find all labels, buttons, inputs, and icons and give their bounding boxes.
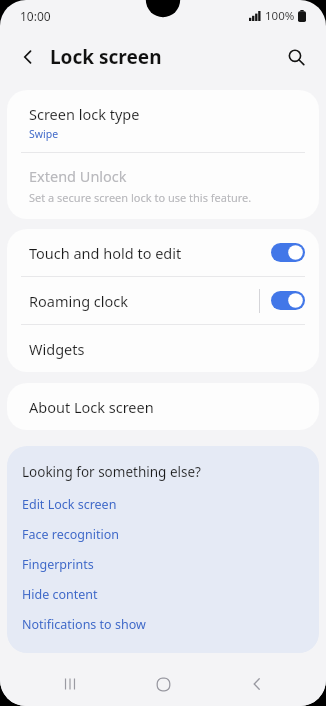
button[interactable]: Roaming clock xyxy=(7,277,319,324)
button[interactable]: About Lock screen xyxy=(7,383,319,430)
staticText: Looking for something else? xyxy=(22,463,201,481)
staticText: About Lock screen xyxy=(29,397,154,417)
staticText: Hide content xyxy=(22,586,98,603)
button[interactable]: Edit Lock screen xyxy=(7,489,319,519)
button[interactable]: Face recognition xyxy=(7,519,319,549)
staticText: Touch and hold to edit xyxy=(29,243,182,263)
button[interactable]: Notifications to show xyxy=(7,609,319,639)
staticText: Extend Unlock xyxy=(29,166,127,186)
staticText: Set a secure screen lock to use this fea… xyxy=(29,190,252,205)
button[interactable]: Recent apps xyxy=(46,662,94,706)
button[interactable]: Fingerprints xyxy=(7,549,319,579)
button[interactable]: Toggle on xyxy=(271,291,305,310)
button[interactable]: Touch and hold to edit xyxy=(7,229,319,276)
staticText: Fingerprints xyxy=(22,556,94,573)
button[interactable]: Extend Unlock xyxy=(7,153,319,219)
staticText: 10:00 xyxy=(20,8,51,24)
button[interactable]: Search xyxy=(280,41,312,73)
staticText: Edit Lock screen xyxy=(22,496,117,513)
button[interactable]: Back xyxy=(233,662,281,706)
button[interactable]: Home xyxy=(139,662,187,706)
button[interactable]: Hide content xyxy=(7,579,319,609)
staticText: Screen lock type xyxy=(29,104,140,124)
staticText: 100% xyxy=(265,8,295,24)
button[interactable]: Toggle on xyxy=(271,243,305,262)
staticText: Widgets xyxy=(29,339,85,359)
staticText: Face recognition xyxy=(22,526,119,543)
button[interactable]: Back xyxy=(12,41,44,73)
staticText: Lock screen xyxy=(50,44,162,70)
button[interactable]: Screen lock type xyxy=(7,90,319,152)
button[interactable]: Widgets xyxy=(7,325,319,372)
staticText: Roaming clock xyxy=(29,291,129,311)
staticText: Swipe xyxy=(29,127,59,141)
staticText: Notifications to show xyxy=(22,616,146,633)
